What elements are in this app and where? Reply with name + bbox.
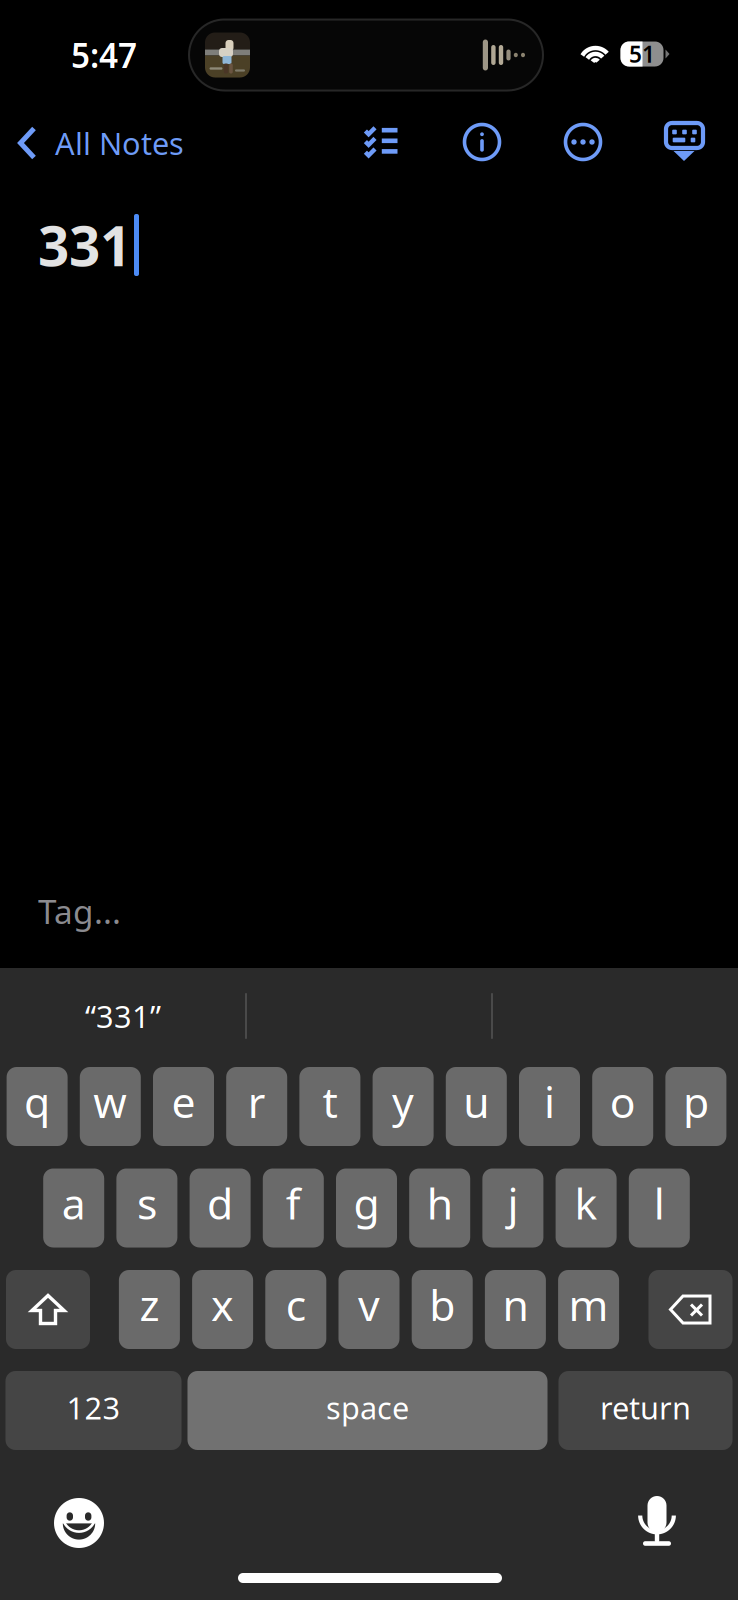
- button[interactable]: o: [592, 1067, 653, 1146]
- button[interactable]: j: [482, 1168, 543, 1247]
- button[interactable]: u: [446, 1067, 507, 1146]
- button[interactable]: More: [555, 114, 611, 170]
- button[interactable]: a: [43, 1168, 104, 1247]
- button[interactable]: Dictation: [628, 1485, 686, 1559]
- staticText: space: [326, 1387, 409, 1428]
- staticText: n: [502, 1276, 528, 1333]
- button[interactable]: h: [409, 1168, 470, 1247]
- button[interactable]: p: [665, 1067, 726, 1146]
- staticText: Tag...: [38, 889, 121, 933]
- staticText: q: [24, 1073, 50, 1130]
- staticText: All Notes: [55, 123, 184, 163]
- button[interactable]: Checklist: [354, 116, 409, 167]
- staticText: g: [353, 1175, 379, 1231]
- button[interactable]: k: [556, 1168, 617, 1247]
- button[interactable]: Note Info: [454, 114, 510, 170]
- button[interactable]: r: [226, 1067, 287, 1146]
- staticText: u: [463, 1073, 489, 1130]
- button[interactable]: Tag...: [38, 889, 121, 933]
- staticText: 123: [66, 1387, 120, 1428]
- staticText: c: [286, 1276, 306, 1333]
- staticText: j: [507, 1175, 518, 1231]
- button[interactable]: n: [485, 1270, 546, 1349]
- button[interactable]: m: [558, 1270, 619, 1349]
- button[interactable]: x: [192, 1270, 253, 1349]
- button[interactable]: Hide Keyboard: [656, 113, 712, 171]
- button[interactable]: i: [519, 1067, 580, 1146]
- button[interactable]: f: [263, 1168, 324, 1247]
- button[interactable]: y: [373, 1067, 434, 1146]
- staticText: s: [137, 1175, 157, 1231]
- staticText: r: [248, 1073, 266, 1130]
- button[interactable]: s: [116, 1168, 177, 1247]
- button[interactable]: return: [558, 1371, 732, 1450]
- button[interactable]: q: [7, 1067, 68, 1146]
- staticText: f: [286, 1175, 301, 1231]
- button[interactable]: Emoji: [44, 1488, 114, 1558]
- staticText: d: [207, 1175, 233, 1231]
- button[interactable]: All Notes: [0, 111, 198, 175]
- button[interactable]: v: [338, 1270, 399, 1349]
- staticText: w: [93, 1073, 127, 1130]
- button[interactable]: b: [412, 1270, 473, 1349]
- button[interactable]: “331”: [0, 991, 246, 1041]
- staticText: v: [358, 1276, 380, 1333]
- button[interactable]: e: [153, 1067, 214, 1146]
- staticText: 51: [629, 39, 655, 69]
- staticText: o: [610, 1073, 636, 1130]
- staticText: z: [139, 1276, 159, 1333]
- staticText: y: [392, 1073, 414, 1130]
- staticText: k: [575, 1175, 598, 1231]
- staticText: 331: [38, 209, 131, 281]
- staticText: i: [544, 1073, 555, 1130]
- button[interactable]: g: [336, 1168, 397, 1247]
- button[interactable]: space: [187, 1371, 547, 1450]
- staticText: return: [600, 1387, 691, 1428]
- button[interactable]: Shift: [6, 1270, 90, 1349]
- button[interactable]: w: [80, 1067, 141, 1146]
- staticText: 5:47: [71, 33, 137, 77]
- button[interactable]: d: [190, 1168, 251, 1247]
- button[interactable]: t: [299, 1067, 360, 1146]
- button[interactable]: Delete: [648, 1270, 732, 1349]
- staticText: e: [171, 1073, 195, 1130]
- staticText: l: [654, 1175, 665, 1231]
- button[interactable]: z: [119, 1270, 180, 1349]
- staticText: b: [429, 1276, 455, 1333]
- button[interactable]: l: [629, 1168, 690, 1247]
- staticText: t: [322, 1073, 337, 1130]
- staticText: h: [427, 1175, 453, 1231]
- staticText: m: [569, 1276, 609, 1333]
- button[interactable]: c: [265, 1270, 326, 1349]
- staticText: “331”: [85, 996, 161, 1036]
- staticText: p: [683, 1073, 709, 1130]
- staticText: a: [62, 1175, 86, 1231]
- staticText: x: [211, 1276, 234, 1333]
- button[interactable]: 123: [5, 1371, 181, 1450]
